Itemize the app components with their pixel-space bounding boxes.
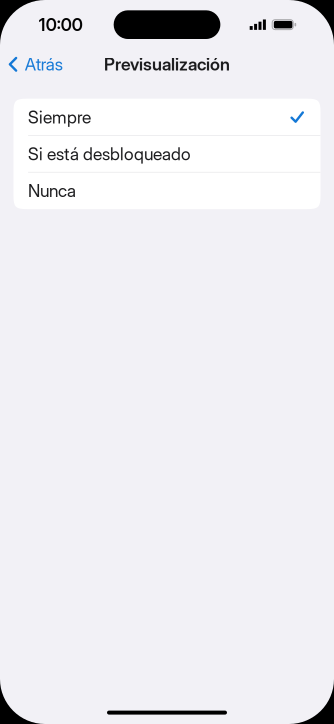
staticText: Si está desbloqueado: [28, 143, 191, 164]
button[interactable]: Si está desbloqueado: [13, 135, 320, 172]
button[interactable]: Nunca: [13, 172, 320, 209]
staticText: Atrás: [25, 54, 63, 75]
staticText: Previsualización: [104, 54, 230, 75]
staticText: Nunca: [28, 180, 76, 201]
button[interactable]: Atrás: [0, 49, 71, 79]
staticText: 10:00: [39, 14, 83, 35]
button[interactable]: Siempre: [13, 99, 320, 135]
staticText: Siempre: [28, 107, 91, 128]
